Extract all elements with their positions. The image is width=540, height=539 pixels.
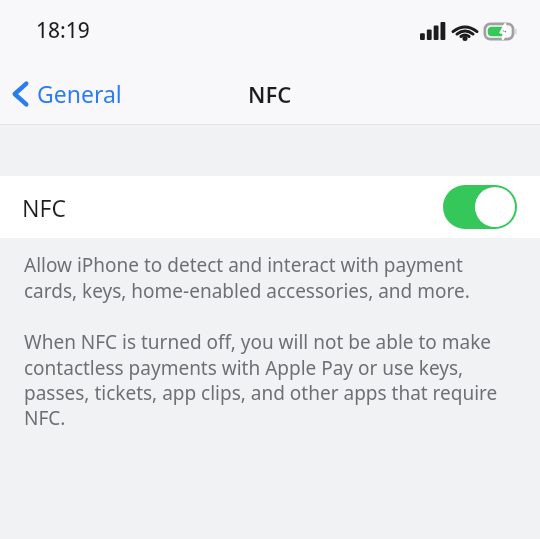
staticText: When NFC is turned off, you will not be … <box>24 329 518 430</box>
staticText: NFC <box>22 192 66 223</box>
staticText: NFC <box>248 79 292 109</box>
button[interactable]: NFC <box>0 176 540 238</box>
button[interactable]: NFC on <box>443 185 517 229</box>
staticText: General <box>37 78 122 109</box>
staticText: Allow iPhone to detect and interact with… <box>24 252 518 303</box>
staticText: 18:19 <box>36 16 90 45</box>
button[interactable]: General <box>8 72 126 115</box>
